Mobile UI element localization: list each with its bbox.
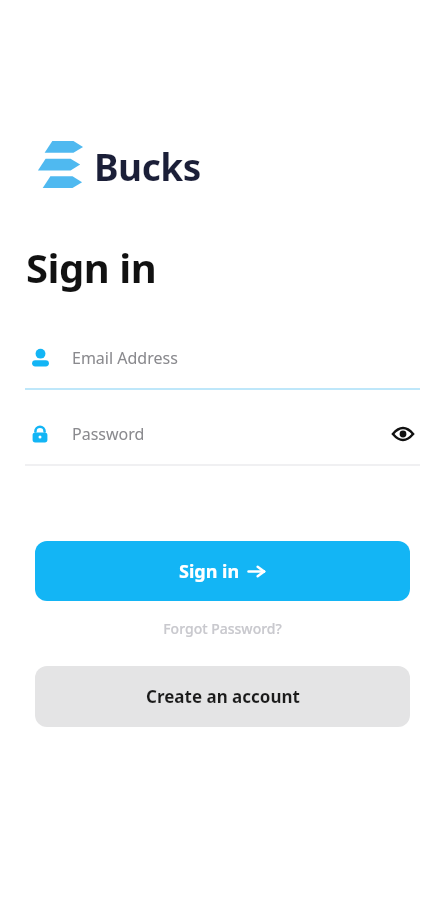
staticText: Bucks (94, 141, 201, 191)
staticText: Forgot Password? (163, 619, 282, 638)
staticText: Password (72, 423, 388, 445)
staticText: Email Address (72, 347, 418, 369)
staticText: Sign in (179, 559, 240, 584)
button[interactable]: Password (0, 412, 445, 466)
staticText: Sign in (26, 240, 157, 294)
button[interactable]: Sign in (35, 541, 410, 601)
button[interactable]: Show password (388, 419, 418, 449)
button[interactable]: Email Address (0, 336, 445, 390)
button[interactable]: Create an account (35, 666, 410, 727)
staticText: Create an account (146, 685, 300, 708)
button[interactable]: Forgot Password? (0, 619, 445, 638)
